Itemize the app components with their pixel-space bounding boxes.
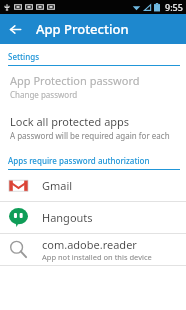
- staticText: com.adobe.reader: [42, 237, 137, 252]
- button[interactable]: Back: [0, 14, 30, 44]
- button[interactable]: Lock all protected apps: [0, 107, 186, 148]
- button[interactable]: Gmail: [0, 170, 186, 201]
- staticText: Gmail: [42, 178, 73, 193]
- staticText: App not installed on this device: [42, 252, 152, 262]
- staticText: Apps require password authorization: [8, 155, 150, 166]
- button[interactable]: com.adobe.reader: [0, 234, 186, 265]
- staticText: App Protection: [36, 20, 129, 38]
- staticText: App Protection password: [10, 73, 140, 88]
- button[interactable]: App Protection password: [0, 66, 186, 107]
- staticText: Hangouts: [42, 210, 93, 225]
- staticText: Settings: [8, 51, 40, 62]
- staticText: 9:55: [165, 1, 183, 13]
- staticText: Lock all protected apps: [10, 114, 130, 129]
- button[interactable]: Hangouts: [0, 202, 186, 233]
- staticText: Change password: [10, 89, 78, 100]
- staticText: A password will be required again for ea…: [10, 130, 178, 141]
